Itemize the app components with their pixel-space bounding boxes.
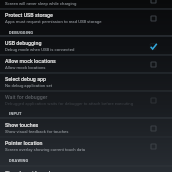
other: Disabled, unchecked — [147, 12, 159, 24]
other: Enabled, checked — [147, 40, 159, 52]
button[interactable]: USB debugging — [0, 37, 172, 55]
staticText: Wait for debugger — [5, 94, 48, 100]
button[interactable]: Show touches — [0, 119, 172, 137]
staticText: Allow mock locations — [5, 58, 56, 64]
staticText: Allow mock locations — [5, 65, 46, 70]
staticText: Pointer location — [5, 140, 43, 146]
staticText: Show touches — [5, 122, 39, 128]
button[interactable]: Wait for debugger — [0, 91, 172, 109]
button[interactable]: Pointer location — [0, 137, 172, 155]
other: Disabled, unchecked — [147, 94, 159, 106]
other: Disabled, unchecked — [147, 58, 159, 70]
staticText: Screen will never sleep while charging — [5, 1, 77, 6]
staticText: Protect USB storage — [5, 12, 53, 18]
staticText: DEBUGGING — [9, 30, 34, 35]
button[interactable]: Protect USB storage — [0, 9, 172, 27]
staticText: Apps must request permission to read USB… — [5, 19, 102, 24]
other: Disabled, unchecked — [147, 122, 159, 134]
staticText: Select debug app — [5, 76, 47, 82]
other: Disabled, unchecked — [147, 0, 159, 6]
button[interactable]: Stay awake — [0, 0, 172, 9]
button[interactable]: Show layout bounds — [0, 167, 172, 172]
staticText: INPUT — [9, 111, 22, 116]
staticText: Screen overlay showing current touch dat… — [5, 147, 86, 152]
staticText: Debugged application waits for debugger … — [5, 101, 134, 106]
staticText: Show layout bounds — [5, 170, 53, 172]
other: Disabled, unchecked — [147, 140, 159, 152]
staticText: DRAWING — [9, 158, 29, 163]
button[interactable]: Select debug app — [0, 73, 172, 91]
staticText: USB debugging — [5, 40, 42, 46]
button[interactable]: Allow mock locations — [0, 55, 172, 73]
staticText: No debug application set — [5, 83, 53, 88]
staticText: Debug mode when USB is connected — [5, 47, 75, 52]
staticText: Show visual feedback for touches — [5, 129, 69, 134]
